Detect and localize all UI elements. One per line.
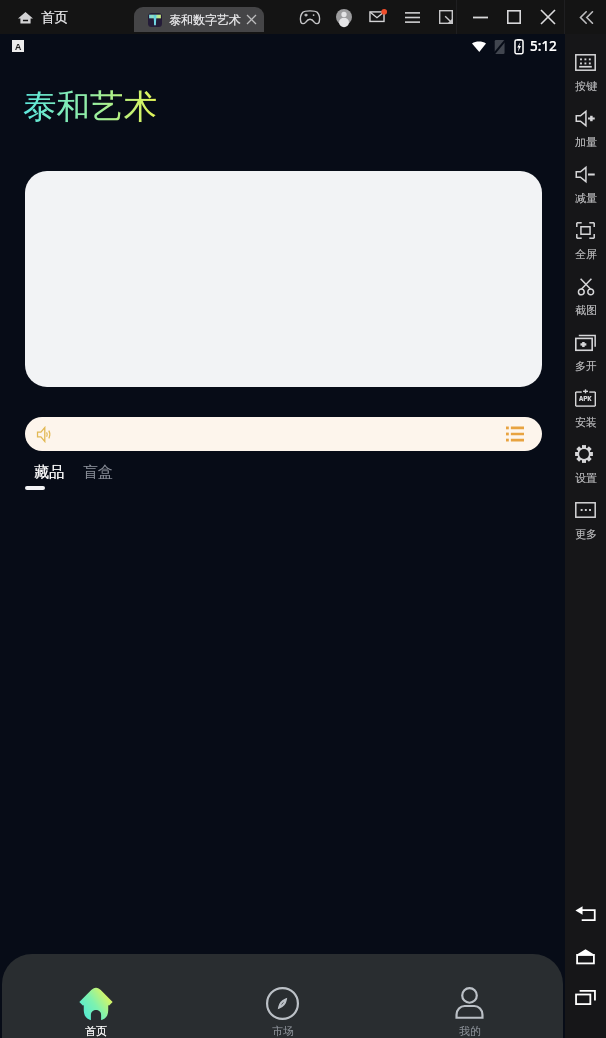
staticText: 更多: [575, 527, 597, 541]
button[interactable]: Back: [565, 896, 606, 930]
button[interactable]: Account: [330, 3, 358, 31]
button[interactable]: Minimize: [465, 2, 495, 32]
button[interactable]: APK: [565, 380, 606, 430]
staticText: 减量: [575, 191, 597, 205]
button[interactable]: 设置: [565, 436, 606, 486]
staticText: 5:12: [530, 37, 557, 55]
button[interactable]: Recents: [565, 980, 606, 1014]
button[interactable]: Collapse sidebar: [571, 2, 601, 32]
button[interactable]: 减量: [565, 156, 606, 206]
button[interactable]: 加量: [565, 100, 606, 150]
button[interactable]: Home: [565, 939, 606, 973]
staticText: 加量: [575, 135, 597, 149]
button[interactable]: [25, 171, 542, 387]
button[interactable]: 泰和数字艺术: [134, 7, 264, 32]
staticText: 盲盒: [83, 463, 113, 482]
button[interactable]: 按键: [565, 44, 606, 94]
staticText: 首页: [41, 9, 68, 26]
staticText: 藏品: [34, 463, 64, 482]
staticText: 安装: [575, 415, 597, 429]
staticText: 泰和艺术: [23, 86, 157, 128]
button[interactable]: Announcements: [25, 417, 542, 451]
button[interactable]: Messages: [364, 2, 392, 30]
staticText: 首页: [85, 1024, 107, 1038]
button[interactable]: 多开: [565, 324, 606, 374]
staticText: 多开: [575, 359, 597, 373]
staticText: 我的: [459, 1024, 481, 1038]
button[interactable]: Game center: [296, 3, 324, 31]
button[interactable]: 更多: [565, 492, 606, 542]
button[interactable]: Announcements: [506, 426, 524, 442]
button[interactable]: 首页: [2, 954, 189, 1038]
staticText: 市场: [272, 1024, 294, 1038]
button[interactable]: 盲盒: [77, 463, 113, 487]
staticText: A: [15, 40, 22, 52]
staticText: 泰和数字艺术: [169, 12, 241, 27]
staticText: 截图: [575, 303, 597, 317]
button[interactable]: 我的: [376, 954, 563, 1038]
button[interactable]: 截图: [565, 268, 606, 318]
button[interactable]: 藏品: [25, 463, 64, 499]
staticText: 设置: [575, 471, 597, 485]
staticText: 全屏: [575, 247, 597, 261]
button[interactable]: Close tab: [245, 12, 258, 27]
staticText: 按键: [575, 79, 597, 93]
button[interactable]: Maximize: [499, 2, 529, 32]
button[interactable]: 全屏: [565, 212, 606, 262]
button[interactable]: 市场: [189, 954, 376, 1038]
button[interactable]: Resize window: [432, 3, 460, 31]
button[interactable]: Menu: [398, 3, 426, 31]
button[interactable]: Close: [533, 2, 563, 32]
staticText: APK: [579, 394, 592, 404]
button[interactable]: 首页: [0, 0, 82, 34]
